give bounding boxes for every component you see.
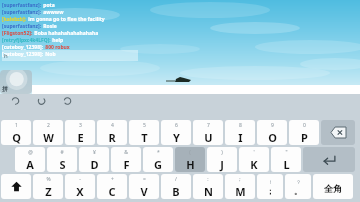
staticText: & [124, 149, 128, 156]
staticText: Z [45, 184, 52, 199]
staticText: 6 [175, 122, 178, 129]
staticText: F [123, 157, 130, 172]
staticText: 全角 [324, 183, 342, 194]
button[interactable]: ; [225, 174, 255, 199]
staticText: C [108, 184, 116, 199]
staticText: [superfastfanz]: [2, 9, 42, 15]
staticText: 800 robux [44, 44, 70, 50]
button[interactable]: 全角 [313, 174, 353, 199]
staticText: M [235, 184, 246, 199]
button[interactable]: 3 [65, 120, 95, 145]
button[interactable]: 8 [225, 120, 255, 145]
staticText: pota [42, 2, 55, 8]
staticText: L [283, 157, 290, 172]
staticText: ; [239, 176, 241, 183]
staticText: [superfastfanz]: [2, 23, 42, 29]
staticText: + [111, 176, 114, 183]
staticText: im gonna go to flee the facility [27, 16, 105, 22]
button[interactable]: : [193, 174, 223, 199]
button[interactable]: 1 [1, 120, 31, 145]
staticText: [cuteboy_12398]: [2, 51, 44, 57]
staticText: D [90, 157, 99, 172]
staticText: 0 [303, 122, 306, 129]
staticText: help [51, 37, 64, 43]
staticText: W [43, 130, 54, 145]
staticText: # [60, 149, 64, 156]
staticText: 7 [207, 122, 210, 129]
button[interactable]: # [47, 147, 77, 172]
staticText: Q [12, 130, 21, 145]
staticText: P [301, 130, 308, 145]
staticText: ( [189, 149, 191, 156]
button[interactable]: / [161, 174, 191, 199]
button[interactable]: ¥ [79, 147, 109, 172]
button[interactable]: 4 [97, 120, 127, 145]
button[interactable]: Input method [0, 70, 32, 94]
staticText: ？ [296, 179, 301, 185]
staticText: [Fligston52]: [2, 30, 33, 36]
button[interactable]: Backspace [321, 120, 355, 145]
button[interactable]: 0 [289, 120, 319, 145]
staticText: S [59, 157, 66, 172]
button[interactable]: + [97, 174, 127, 199]
button[interactable]: 9 [257, 120, 287, 145]
staticText: [cuteboy_12398]: [2, 44, 44, 50]
staticText: [superfastfanz]: [2, 2, 42, 8]
button[interactable]: Undo [6, 94, 24, 106]
button[interactable]: Enter [303, 147, 355, 172]
button[interactable]: ？ [285, 174, 311, 199]
staticText: O [268, 130, 277, 145]
staticText: 拼 [2, 85, 8, 93]
staticText: 1 [15, 122, 18, 129]
staticText: H [186, 157, 195, 172]
staticText: ； [266, 186, 274, 196]
staticText: R [108, 130, 116, 145]
staticText: ！ [268, 179, 273, 185]
button[interactable]: 5 [129, 120, 159, 145]
button[interactable]: h [2, 50, 138, 61]
button[interactable]: " [271, 147, 301, 172]
staticText: V [140, 184, 148, 199]
button[interactable]: 2 [33, 120, 63, 145]
staticText: 。 [294, 186, 302, 196]
staticText: Boba hahahahahahahaha [33, 30, 99, 36]
staticText: A [26, 157, 34, 172]
staticText: K [250, 157, 258, 172]
staticText: h [4, 52, 8, 60]
staticText: G [154, 157, 162, 172]
button[interactable]: ) [207, 147, 237, 172]
button[interactable]: 7 [193, 120, 223, 145]
button[interactable]: 6 [161, 120, 191, 145]
staticText: awwww [42, 9, 64, 15]
staticText: 2 [47, 122, 50, 129]
button[interactable]: - [65, 174, 95, 199]
staticText: Rosie [42, 23, 57, 29]
staticText: 3 [79, 122, 82, 129]
staticText: J [220, 157, 224, 172]
staticText: ' [253, 149, 255, 156]
staticText: I [238, 130, 243, 145]
staticText: 5 [143, 122, 146, 129]
staticText: T [141, 130, 148, 145]
button[interactable]: ！ [257, 174, 283, 199]
staticText: U [204, 130, 213, 145]
button[interactable]: & [111, 147, 141, 172]
staticText: E [77, 130, 84, 145]
button[interactable]: * [143, 147, 173, 172]
staticText: N [204, 184, 213, 199]
button[interactable]: @ [15, 147, 45, 172]
staticText: B [172, 184, 180, 199]
button[interactable]: Reset [58, 94, 76, 106]
staticText: : [207, 176, 209, 183]
button[interactable]: ( [175, 147, 205, 172]
button[interactable]: Redo [32, 94, 50, 106]
button[interactable]: = [129, 174, 159, 199]
staticText: 8 [239, 122, 242, 129]
staticText: [retryfjlpxc4k4LFQ]: [2, 37, 51, 43]
staticText: 4 [111, 122, 114, 129]
staticText: 9 [271, 122, 274, 129]
button[interactable]: % [33, 174, 63, 199]
button[interactable]: ' [239, 147, 269, 172]
button[interactable]: Shift [1, 174, 31, 199]
